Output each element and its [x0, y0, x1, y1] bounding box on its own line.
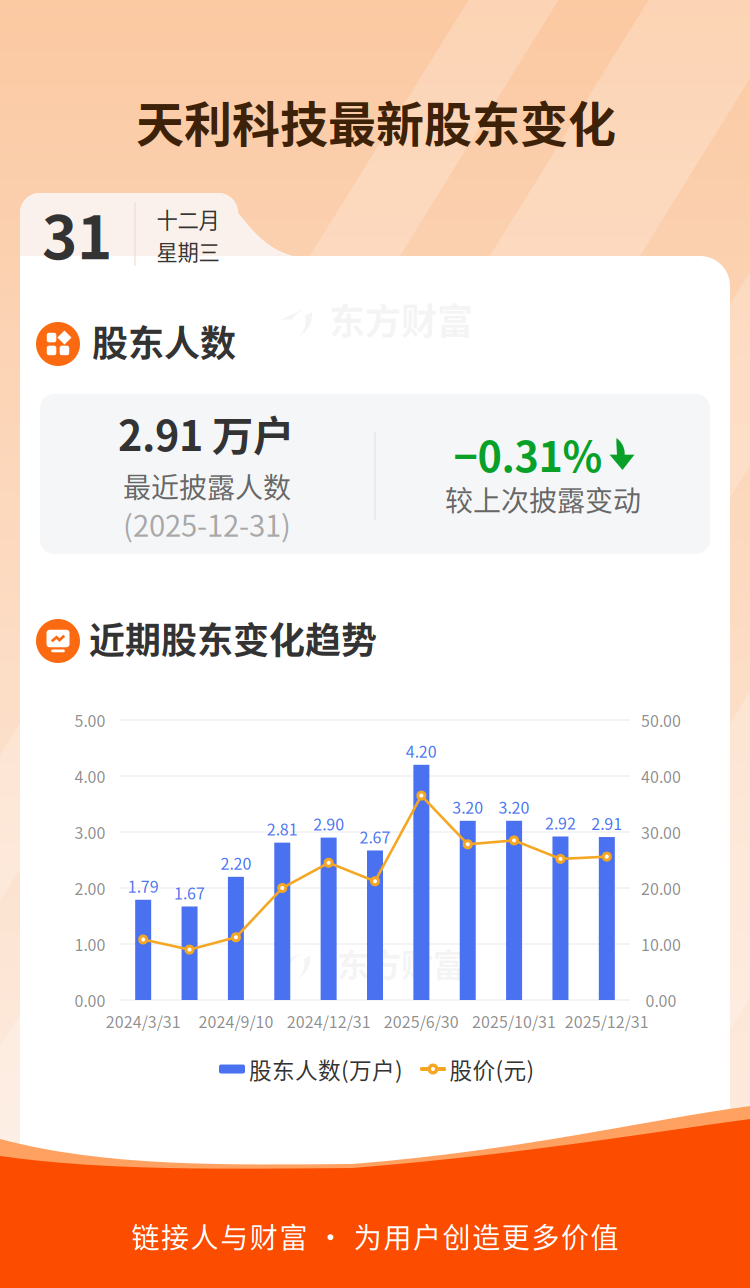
staticText: 3.20	[499, 795, 530, 818]
staticText: 2.00	[74, 876, 105, 900]
staticText: 东方财富	[329, 293, 473, 345]
staticText: 2.92	[545, 811, 576, 834]
staticText: 0.00	[645, 988, 676, 1012]
staticText: 1.00	[74, 932, 105, 956]
staticText: 31	[42, 190, 112, 276]
staticText: 2025/6/30	[384, 1009, 459, 1033]
staticText: −0.31%	[453, 424, 602, 484]
staticText: 50.00	[641, 708, 681, 732]
staticText: 2024/3/31	[106, 1009, 181, 1033]
staticText: 股东人数	[92, 315, 236, 367]
staticText: 2025/10/31	[472, 1009, 556, 1033]
staticText: 2.91	[591, 811, 622, 835]
staticText: 4.20	[406, 739, 437, 762]
staticText: 4.00	[74, 764, 105, 788]
staticText: 2025/12/31	[565, 1009, 649, 1033]
staticText: 2.90	[313, 812, 344, 835]
staticText: 40.00	[641, 764, 681, 788]
staticText: 近期股东变化趋势	[89, 612, 377, 664]
staticText: 0.00	[74, 988, 105, 1012]
staticText: 星期三	[156, 236, 219, 266]
staticText: 2.81	[267, 817, 298, 840]
staticText: 较上次披露变动	[445, 479, 641, 519]
staticText: 10.00	[641, 932, 681, 956]
staticText: 30.00	[641, 820, 681, 844]
staticText: 最近披露人数	[123, 466, 291, 506]
staticText: 1.67	[174, 881, 205, 904]
staticText: 十二月	[156, 204, 219, 234]
staticText: 3.20	[452, 795, 483, 818]
staticText: 2.67	[359, 825, 390, 848]
staticText: 2024/9/10	[198, 1009, 273, 1033]
staticText: 2024/12/31	[287, 1009, 371, 1033]
staticText: 1.79	[128, 874, 159, 897]
staticText: 链接人与财富 · 为用户创造更多价值	[131, 1216, 619, 1256]
staticText: 天利科技最新股东变化	[136, 86, 616, 156]
staticText: 股价(元)	[449, 1053, 534, 1085]
staticText: 2.91 万户	[118, 403, 294, 463]
staticText: 3.00	[74, 820, 105, 844]
staticText: (2025-12-31)	[123, 503, 291, 545]
staticText: 2.20	[220, 851, 251, 874]
staticText: 20.00	[641, 876, 681, 900]
staticText: 东方财富	[337, 940, 465, 986]
staticText: 5.00	[74, 708, 105, 732]
staticText: 股东人数(万户)	[249, 1053, 403, 1085]
